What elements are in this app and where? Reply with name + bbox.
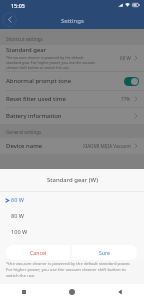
button[interactable]: Abnormal prompt tone toggle: [124, 77, 139, 86]
button[interactable]: 80 W: [0, 208, 144, 224]
button[interactable]: 60 W: [0, 192, 144, 208]
staticText: Reset filter used time: [6, 95, 121, 103]
button[interactable]: Back: [96, 284, 144, 300]
button[interactable]: Back: [2, 12, 17, 27]
staticText: Abnormal prompt tone: [6, 77, 124, 85]
staticText: Battery information: [6, 112, 133, 120]
staticText: 15:05: [11, 2, 25, 9]
staticText: 77%: [121, 96, 131, 102]
staticText: Sure: [99, 249, 111, 256]
button[interactable]: Reset filter used time: [0, 91, 144, 107]
button[interactable]: Cancel: [6, 245, 70, 260]
staticText: Device name: [6, 142, 83, 150]
staticText: *the vacuum cleaner is powered by the de…: [6, 261, 131, 279]
staticText: Settings: [61, 17, 84, 25]
button[interactable]: Sure: [72, 245, 137, 260]
staticText: 100 W: [11, 228, 28, 236]
staticText: Standard gear (W): [47, 176, 98, 184]
button[interactable]: Battery information: [0, 108, 144, 124]
staticText: General settings: [6, 129, 42, 135]
staticText: Shortcut settings: [6, 36, 43, 42]
staticText: 60 W: [11, 196, 25, 204]
staticText: The vacuum cleaner is powered by the def…: [6, 55, 96, 70]
button[interactable]: Home: [48, 284, 96, 300]
button[interactable]: Recent apps: [0, 284, 48, 300]
staticText: Standard gear: [6, 46, 47, 54]
staticText: Cancel: [30, 249, 47, 256]
button[interactable]: Device name: [0, 138, 144, 154]
staticText: XIAOMI MIJIA Vacuum: [83, 143, 131, 149]
button[interactable]: Abnormal prompt tone: [0, 72, 144, 90]
staticText: 60 W: [120, 55, 131, 61]
button[interactable]: Standard gear: [0, 45, 144, 71]
button[interactable]: 100 W: [0, 224, 144, 240]
staticText: 80 W: [11, 212, 25, 220]
